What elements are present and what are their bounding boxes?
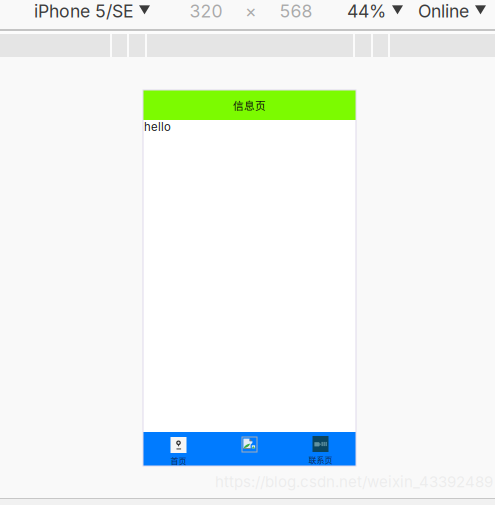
button[interactable]: iPhone 5/SE (34, 0, 150, 22)
button[interactable]: 联系页 (285, 432, 356, 466)
staticText: hello (144, 120, 171, 134)
staticText: × (245, 0, 257, 22)
staticText: 320 (189, 0, 222, 22)
staticText: 联系页 (308, 454, 332, 466)
button[interactable]: Second tab (214, 432, 285, 466)
button[interactable]: Online (418, 0, 486, 22)
staticText: 首页 (170, 455, 186, 467)
staticText: 44% (347, 0, 386, 22)
staticText: https://blog.csdn.net/weixin_43392489 (215, 473, 493, 491)
button[interactable]: 320 (191, 0, 221, 22)
button[interactable]: 568 (281, 0, 311, 22)
staticText: iPhone 5/SE (34, 0, 134, 22)
button[interactable]: 44% (347, 0, 403, 22)
staticText: 568 (279, 0, 312, 22)
button[interactable]: 首页 (143, 432, 214, 466)
staticText: 信息页 (233, 97, 266, 113)
staticText: Online (418, 0, 469, 22)
